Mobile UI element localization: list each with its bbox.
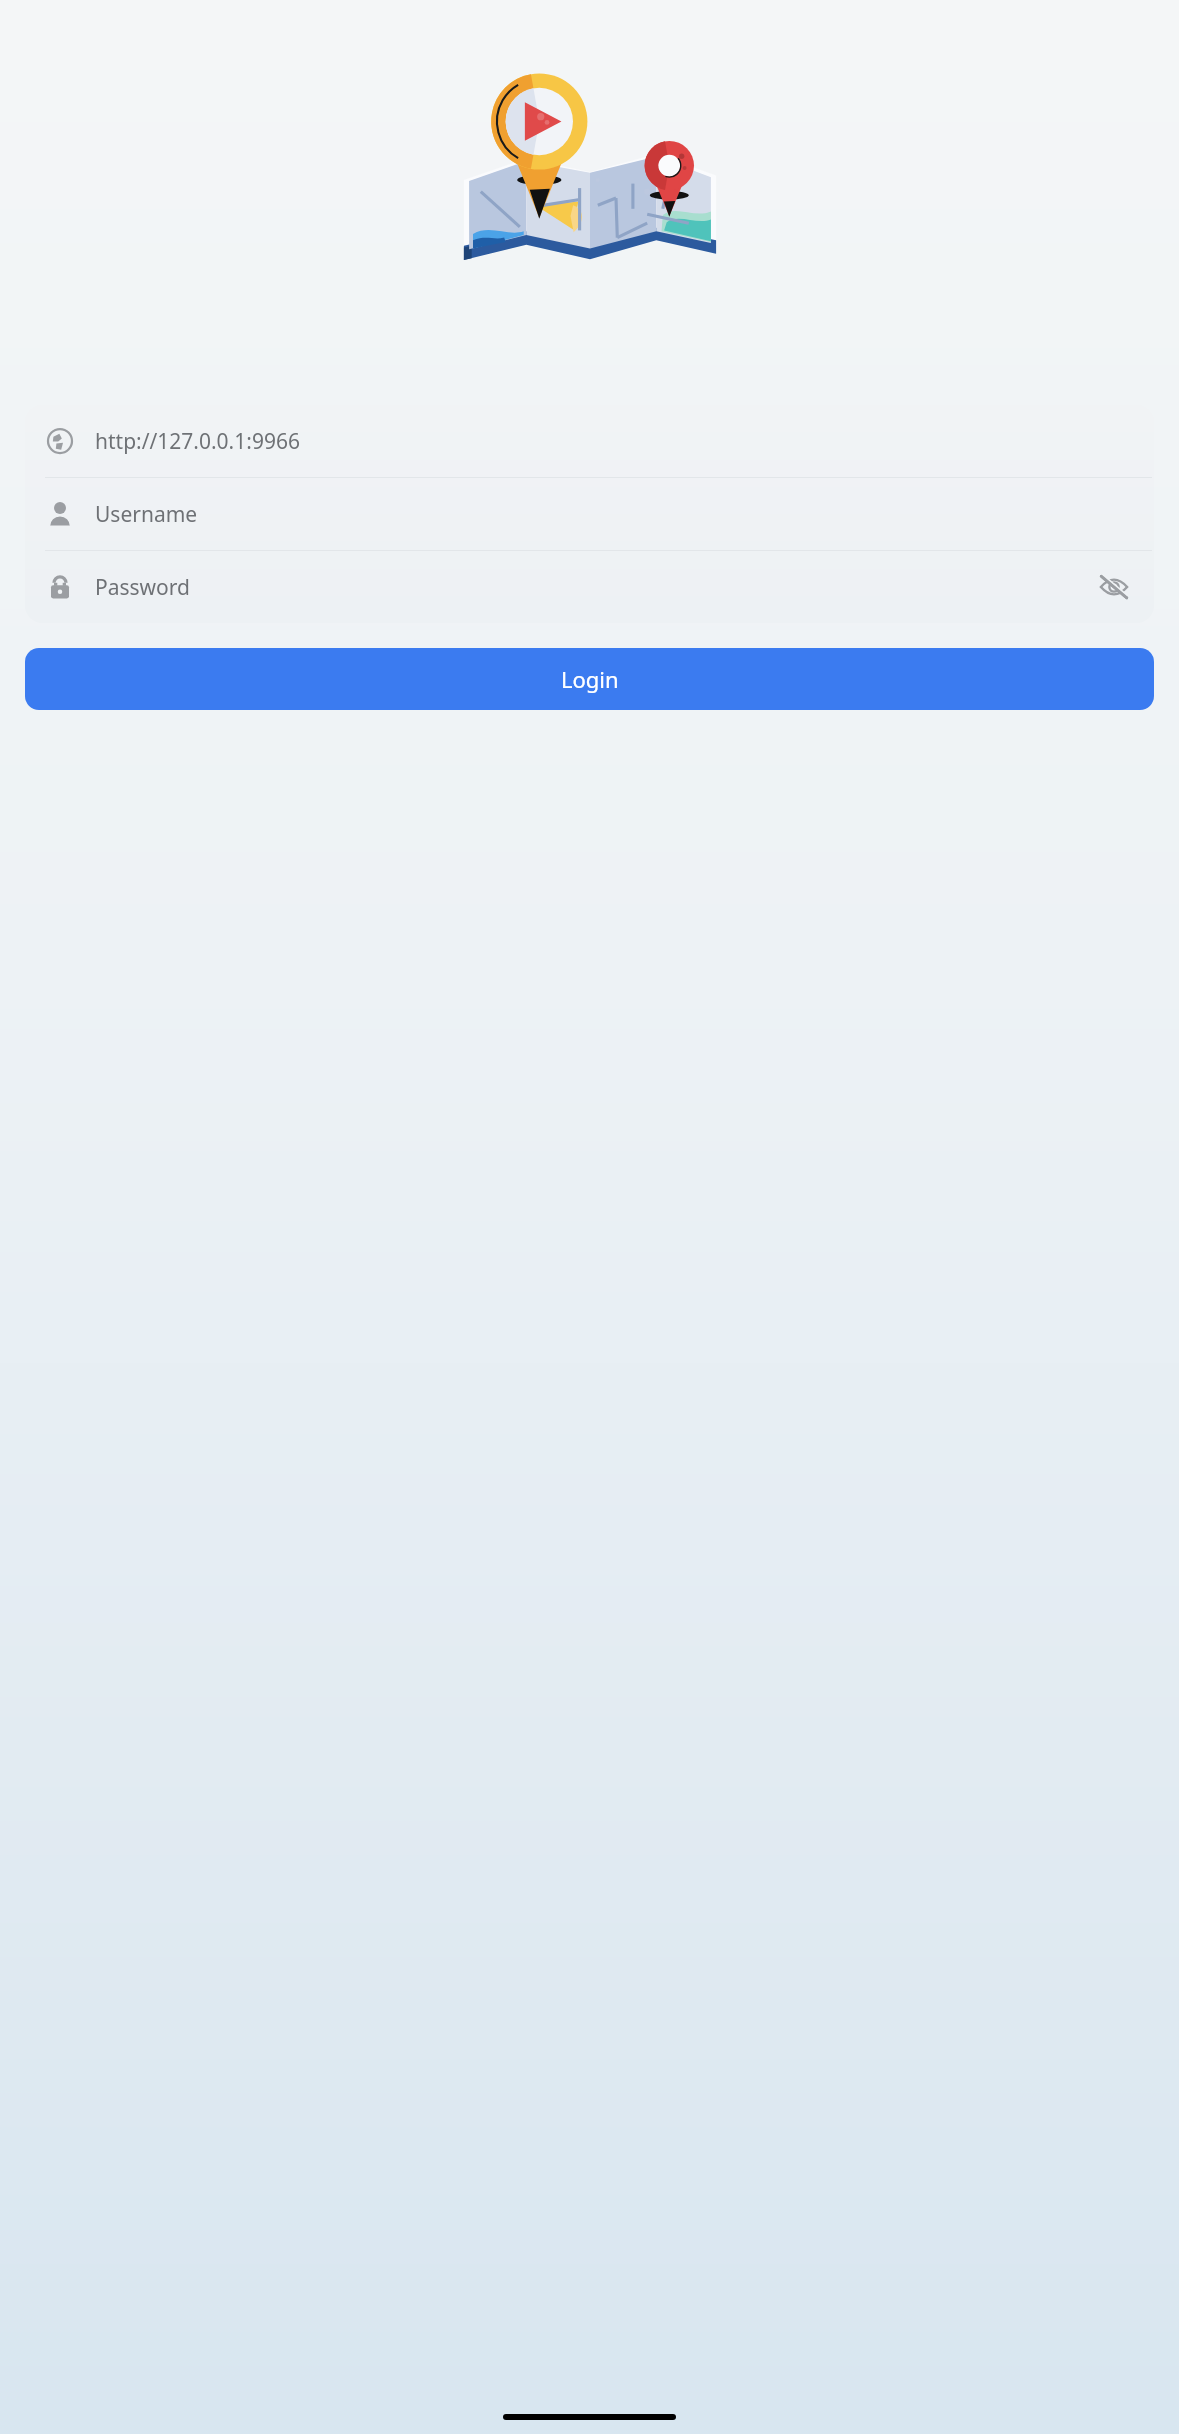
- button[interactable]: Login: [25, 648, 1154, 710]
- button[interactable]: Password: [25, 551, 1154, 623]
- staticText: Username: [95, 500, 1134, 529]
- button[interactable]: Username: [25, 478, 1154, 550]
- button[interactable]: Show password: [1094, 567, 1134, 607]
- button[interactable]: http://127.0.0.1:9966: [25, 405, 1154, 477]
- staticText: Password: [95, 573, 1094, 602]
- staticText: Login: [561, 664, 619, 694]
- staticText: http://127.0.0.1:9966: [95, 427, 1134, 456]
